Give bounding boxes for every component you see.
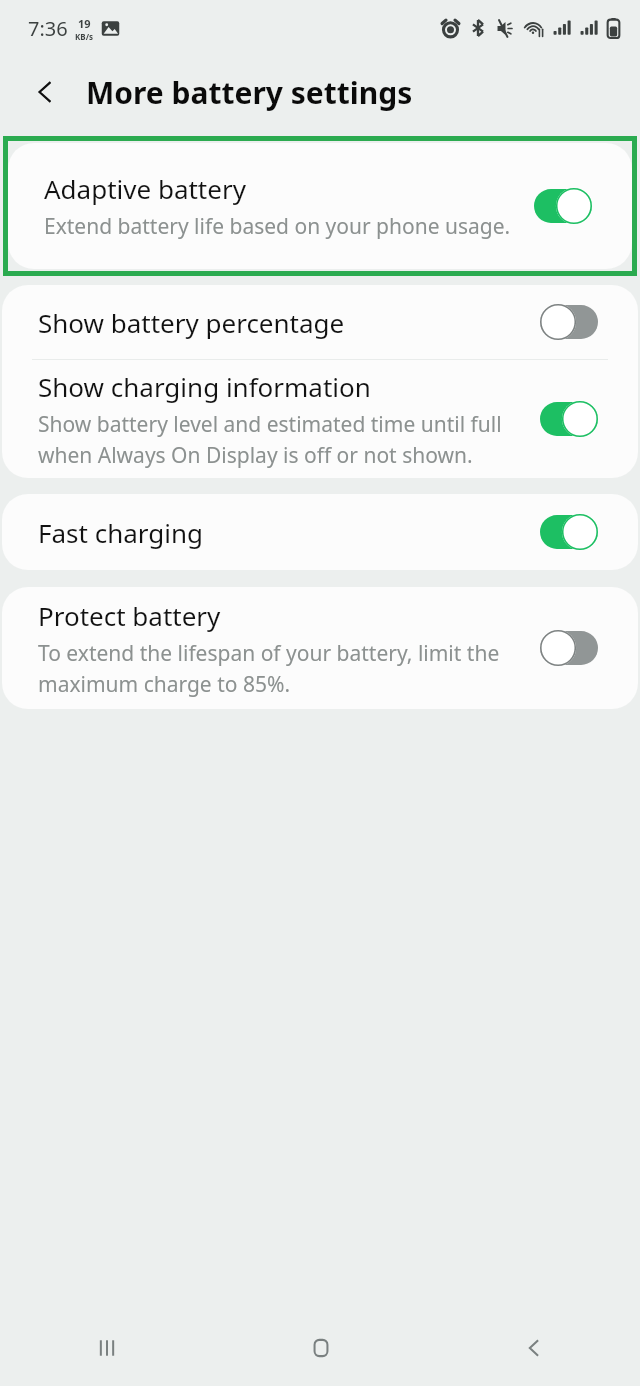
staticText: 19: [78, 16, 91, 31]
staticText: 7:36: [28, 15, 68, 42]
button[interactable]: Recents: [0, 1310, 214, 1386]
button[interactable]: Off: [540, 303, 598, 341]
staticText: Show battery level and estimated time un…: [38, 410, 502, 469]
button[interactable]: On: [534, 187, 592, 225]
button[interactable]: Show charging information: [2, 360, 638, 478]
button[interactable]: Back: [22, 69, 68, 115]
staticText: KB/s: [75, 31, 93, 42]
staticText: To extend the lifespan of your battery, …: [38, 639, 500, 698]
button[interactable]: Adaptive battery: [8, 143, 632, 269]
staticText: Fast charging: [38, 515, 204, 550]
staticText: Adaptive battery: [44, 171, 246, 206]
button[interactable]: Fast charging: [2, 494, 638, 570]
staticText: Show charging information: [38, 369, 371, 404]
button[interactable]: Protect battery: [2, 587, 638, 709]
staticText: Extend battery life based on your phone …: [44, 212, 511, 241]
staticText: Protect battery: [38, 598, 221, 633]
button[interactable]: On: [540, 400, 598, 438]
button[interactable]: On: [540, 513, 598, 551]
staticText: More battery settings: [86, 72, 413, 113]
button[interactable]: Home: [214, 1310, 427, 1386]
button[interactable]: Back: [427, 1310, 640, 1386]
button[interactable]: Show battery percentage: [2, 285, 638, 359]
staticText: Show battery percentage: [38, 305, 345, 340]
button[interactable]: Off: [540, 629, 598, 667]
